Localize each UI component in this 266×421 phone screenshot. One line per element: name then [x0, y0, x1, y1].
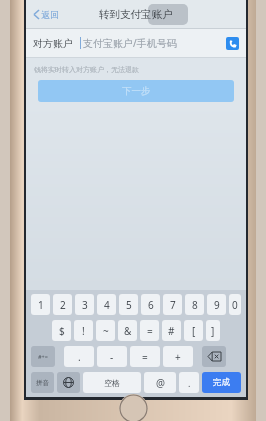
staticText: 转到支付宝账户	[99, 8, 173, 21]
button[interactable]: 0	[229, 294, 241, 315]
button[interactable]: 5	[119, 294, 138, 315]
staticText: 对方账户	[33, 37, 73, 50]
button[interactable]: 9	[207, 294, 226, 315]
button[interactable]: 8	[185, 294, 204, 315]
button[interactable]: !	[74, 320, 93, 341]
staticText: 7	[170, 298, 176, 312]
button[interactable]: #+=	[31, 346, 55, 367]
button[interactable]: +	[163, 346, 193, 367]
staticText: !	[82, 324, 85, 338]
button[interactable]: Switch keyboard	[57, 372, 80, 393]
button[interactable]: ]	[206, 320, 220, 341]
button[interactable]: -	[97, 346, 127, 367]
button[interactable]: =	[130, 346, 160, 367]
staticText: $	[59, 324, 65, 338]
button[interactable]: ~	[96, 320, 115, 341]
staticText: ]	[211, 324, 215, 338]
staticText: 1	[38, 298, 44, 312]
staticText: #	[168, 324, 175, 338]
button[interactable]: 拼音	[31, 372, 54, 393]
staticText: 支付宝账户/手机号码	[83, 36, 226, 50]
staticText: 空格	[104, 378, 120, 388]
button[interactable]: &	[118, 320, 137, 341]
button[interactable]: .	[64, 346, 94, 367]
button[interactable]: 3	[75, 294, 94, 315]
staticText: -	[110, 350, 114, 364]
button[interactable]: #	[162, 320, 181, 341]
button[interactable]: Backspace	[202, 346, 226, 367]
staticText: 6	[148, 298, 154, 312]
staticText: [	[192, 324, 196, 338]
staticText: .	[188, 377, 191, 389]
button[interactable]: Choose contact	[226, 37, 239, 50]
button[interactable]: .	[179, 372, 199, 393]
button[interactable]: 完成	[202, 372, 241, 393]
staticText: .	[78, 350, 81, 364]
button[interactable]: @	[144, 372, 176, 393]
staticText: 完成	[213, 377, 230, 388]
button[interactable]: 7	[163, 294, 182, 315]
staticText: 2	[60, 298, 66, 312]
button[interactable]: 6	[141, 294, 160, 315]
staticText: +	[175, 350, 181, 364]
staticText: &	[124, 324, 132, 338]
button[interactable]: [	[184, 320, 203, 341]
staticText: #+=	[38, 353, 48, 360]
button[interactable]: =	[140, 320, 159, 341]
staticText: 拼音	[36, 379, 49, 387]
staticText: =	[142, 350, 148, 364]
button[interactable]: 对方账户	[26, 29, 246, 57]
button[interactable]: 空格	[83, 372, 141, 393]
staticText: 0	[232, 298, 238, 312]
button[interactable]: 2	[53, 294, 72, 315]
staticText: 3	[82, 298, 88, 312]
staticText: 4	[104, 298, 110, 312]
button[interactable]: 下一步	[38, 80, 234, 102]
staticText: =	[147, 324, 153, 338]
staticText: ~	[103, 324, 109, 338]
staticText: 返回	[41, 9, 59, 20]
staticText: 5	[126, 298, 132, 312]
staticText: 9	[214, 298, 220, 312]
button[interactable]: Home	[119, 394, 148, 421]
button[interactable]: 4	[97, 294, 116, 315]
staticText: @	[156, 376, 165, 390]
button[interactable]: 返回	[30, 4, 63, 25]
staticText: 钱将实时转入对方账户，无法退款	[34, 65, 139, 74]
staticText: 下一步	[122, 85, 151, 97]
button[interactable]: 1	[31, 294, 50, 315]
button[interactable]: $	[52, 320, 71, 341]
staticText: 8	[192, 298, 198, 312]
